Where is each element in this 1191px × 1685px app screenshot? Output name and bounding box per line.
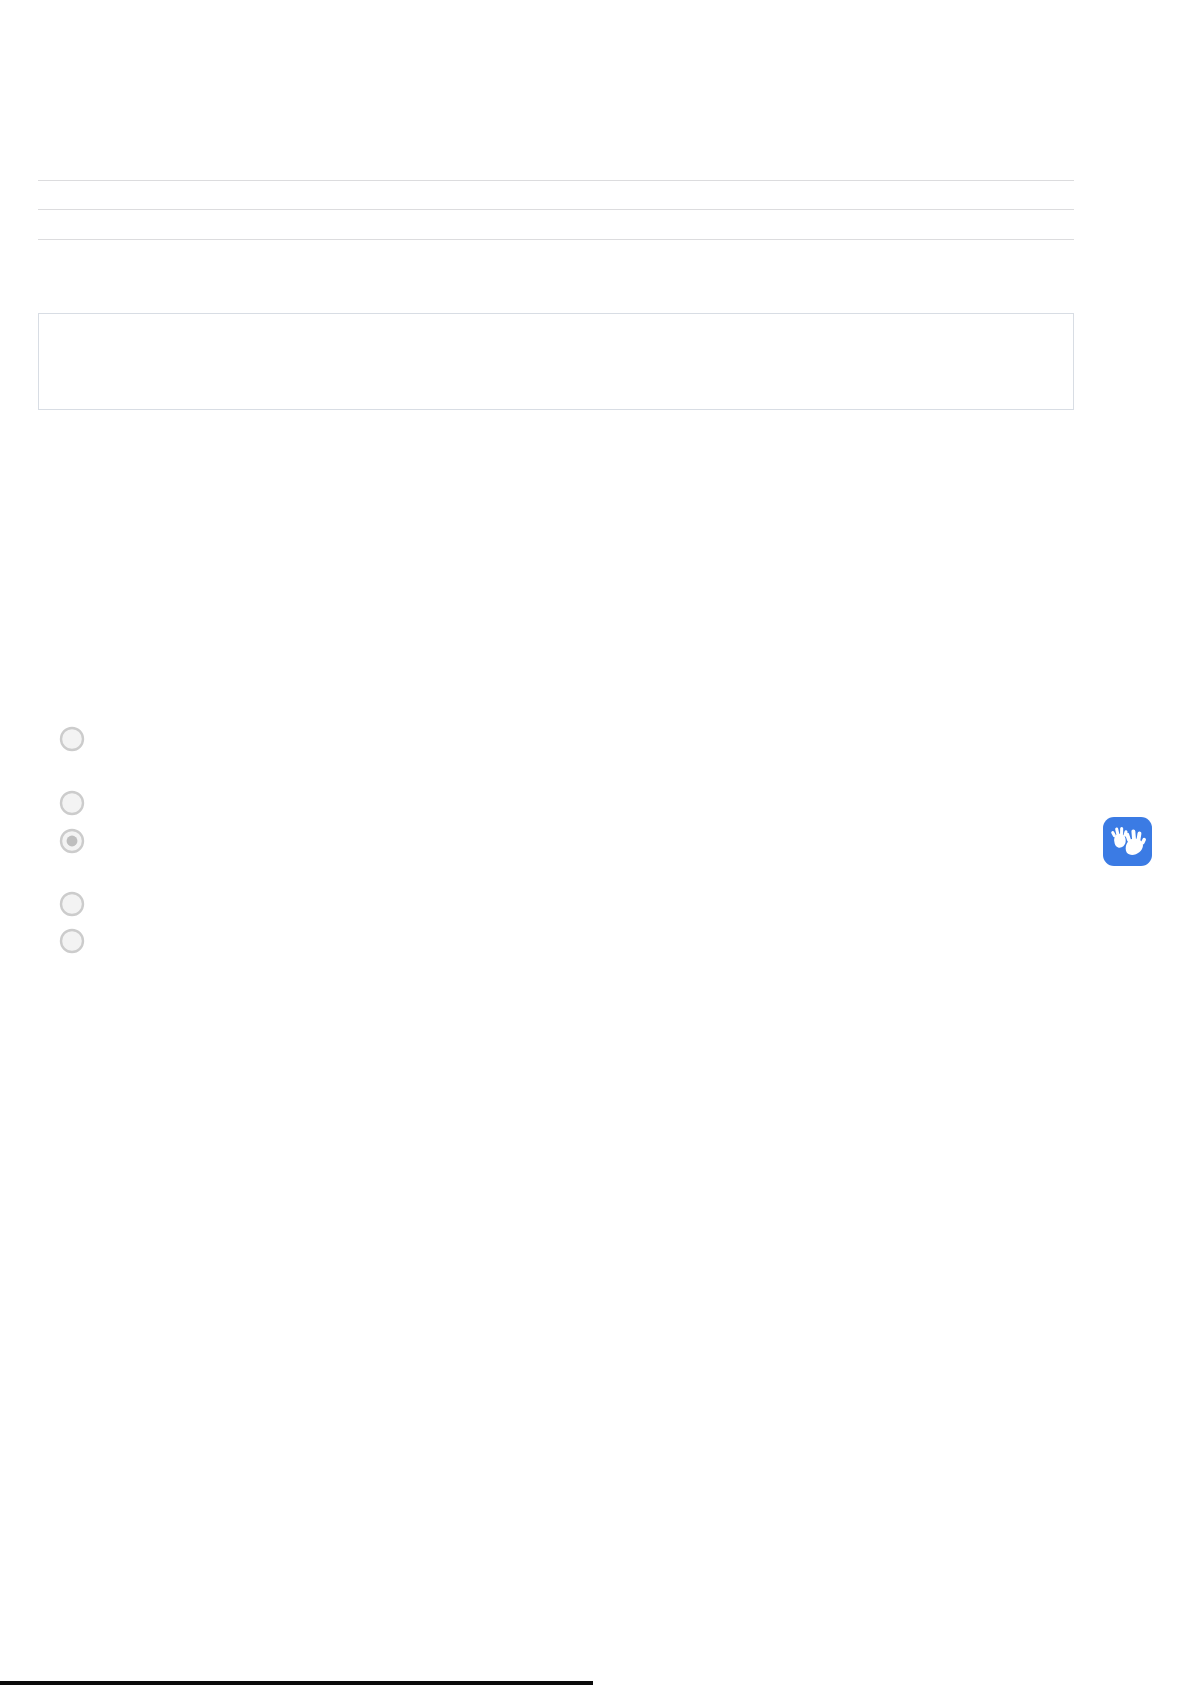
button[interactable]: Option: [59, 790, 85, 816]
button[interactable]: [38, 313, 1074, 410]
button[interactable]: Option: [59, 928, 85, 954]
button[interactable]: Selected option: [59, 828, 85, 854]
button[interactable]: Sign language: [1103, 817, 1152, 866]
button[interactable]: Option: [59, 891, 85, 917]
button[interactable]: Option: [59, 726, 85, 752]
